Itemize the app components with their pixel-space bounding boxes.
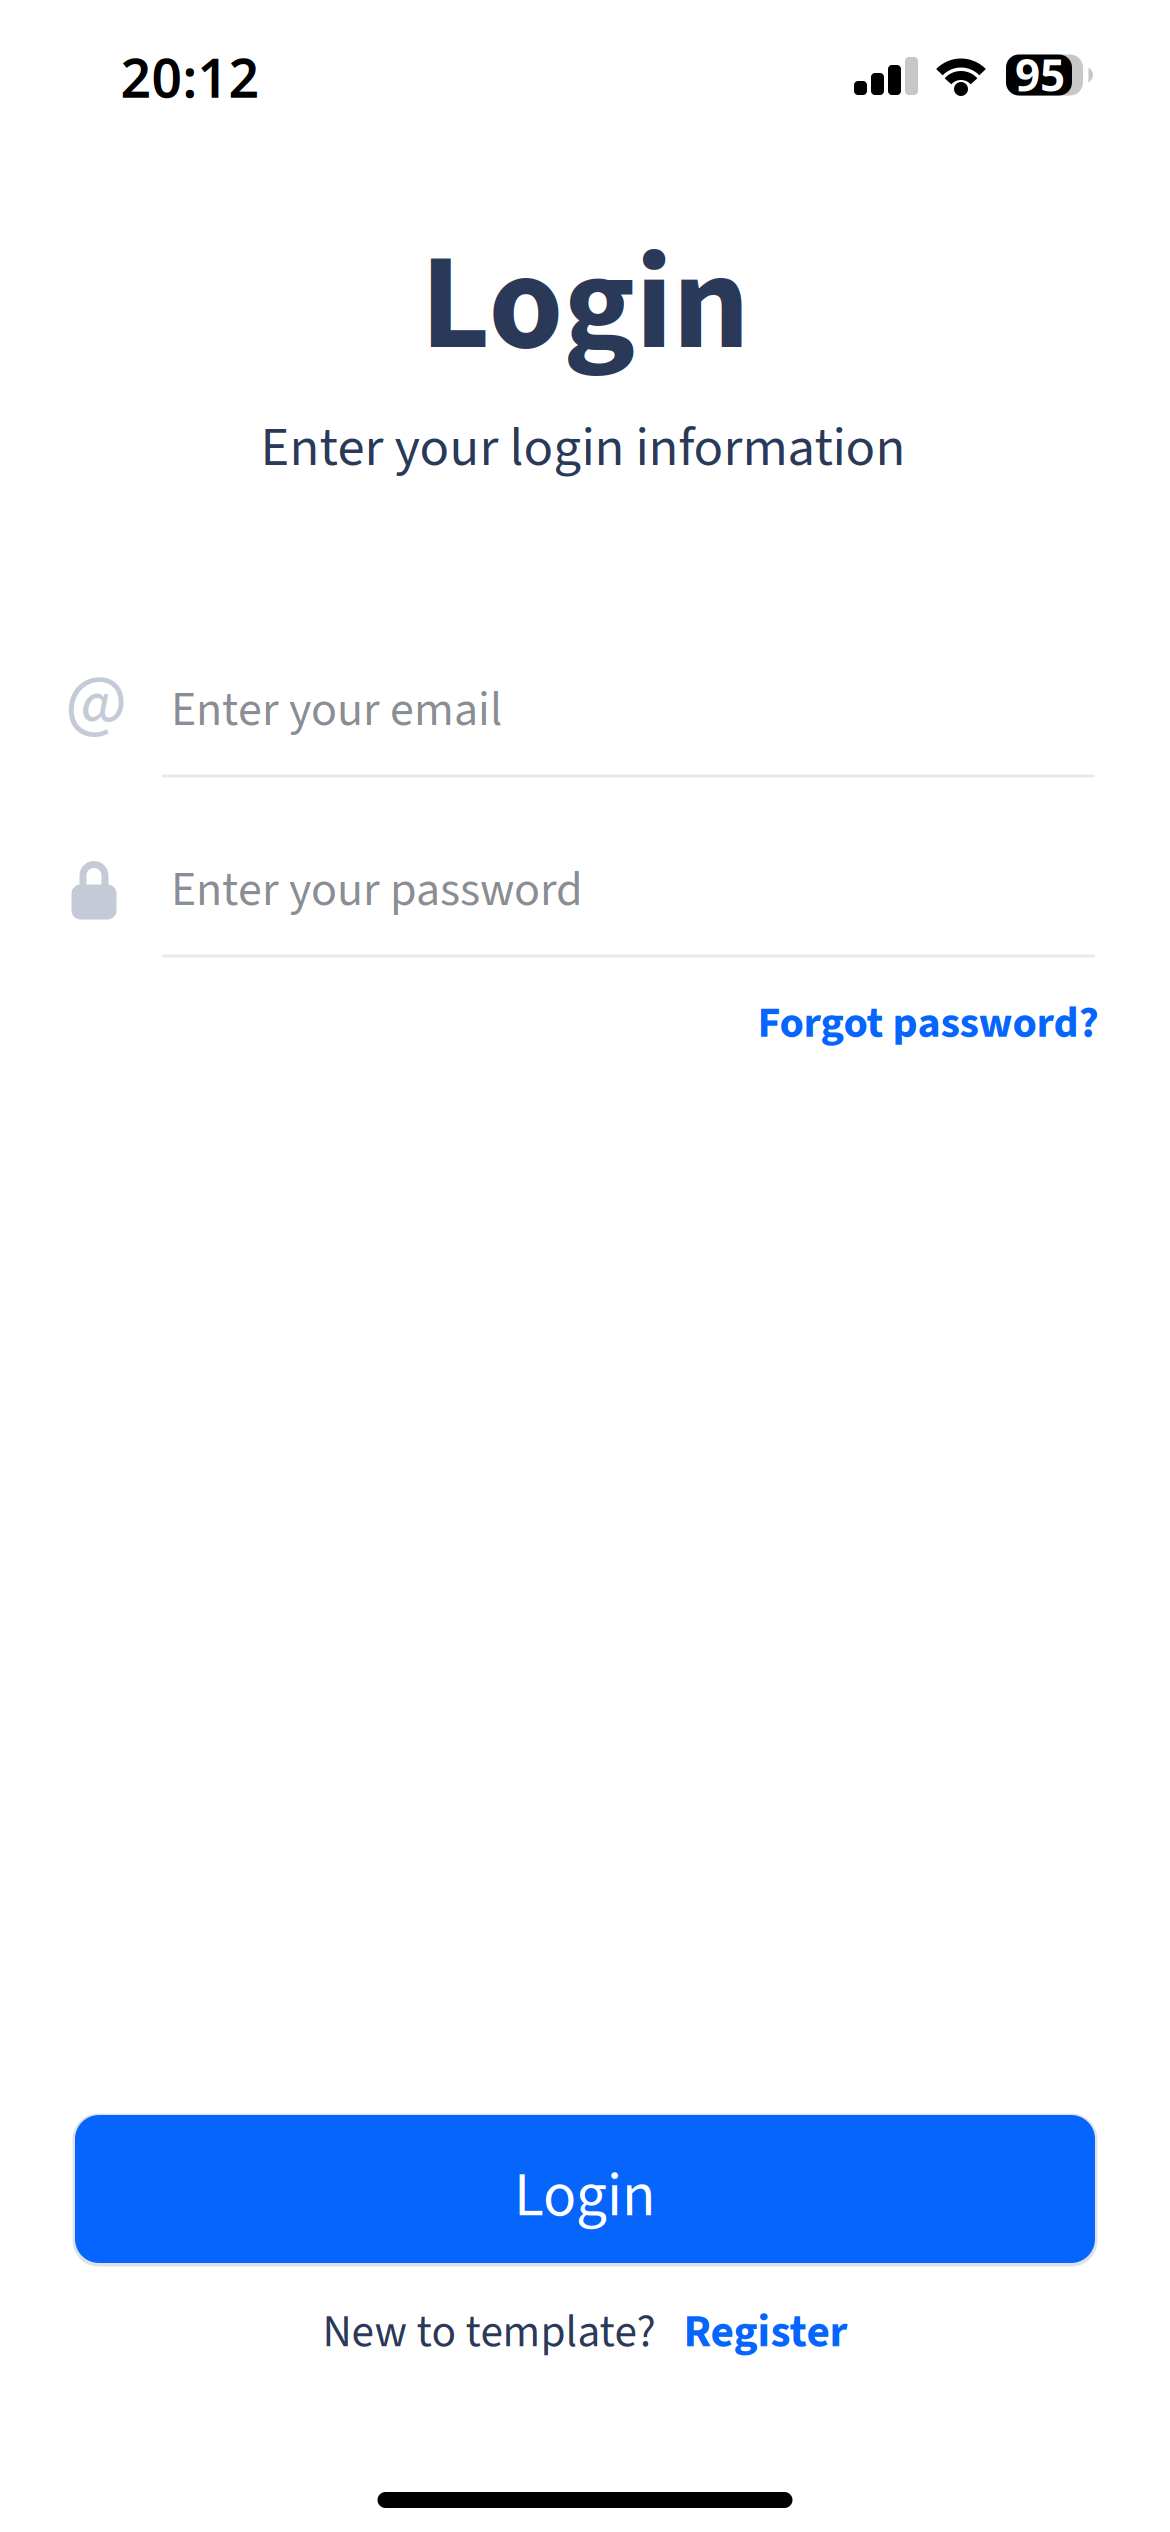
staticText: 20:12 [120, 42, 259, 112]
staticText: Forgot password? [757, 992, 1098, 1054]
staticText: @ [65, 650, 127, 754]
staticText: Login [514, 2152, 656, 2240]
staticText: 95 [1015, 45, 1065, 104]
staticText: Enter your email [171, 676, 502, 744]
button[interactable]: Login [71, 2110, 1099, 2268]
button[interactable]: Enter your password [55, 835, 1105, 965]
button[interactable]: Enter your email [55, 655, 1105, 785]
staticText: Login [420, 209, 749, 401]
button[interactable]: Forgot password? [757, 992, 1098, 1054]
button[interactable]: Register [683, 2300, 847, 2364]
staticText: New to template? [322, 2300, 655, 2364]
staticText: Register [683, 2300, 847, 2364]
staticText: Enter your password [171, 856, 583, 924]
staticText: Enter your login information [260, 409, 905, 487]
